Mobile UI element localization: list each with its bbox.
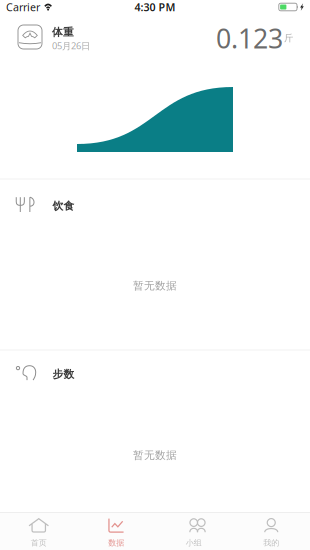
staticText: 体重 xyxy=(52,26,74,39)
staticText: 首页 xyxy=(31,538,47,548)
staticText: 05月26日 xyxy=(52,39,90,52)
staticText: 0.123 xyxy=(216,20,283,56)
staticText: 4:30 PM xyxy=(134,0,175,14)
staticText: 小组 xyxy=(186,538,202,548)
staticText: 我的 xyxy=(263,538,279,548)
button[interactable]: 首页 xyxy=(0,512,77,550)
button[interactable]: 小组 xyxy=(155,512,232,550)
staticText: Carrier xyxy=(6,0,40,14)
staticText: 暂无数据 xyxy=(133,449,177,462)
staticText: 数据 xyxy=(108,538,124,548)
staticText: 饮食 xyxy=(52,199,74,212)
button[interactable]: 我的 xyxy=(232,512,310,550)
staticText: 暂无数据 xyxy=(133,279,177,292)
button[interactable]: 数据 xyxy=(77,512,155,550)
staticText: 步数 xyxy=(52,368,74,381)
staticText: 斤 xyxy=(284,32,293,44)
